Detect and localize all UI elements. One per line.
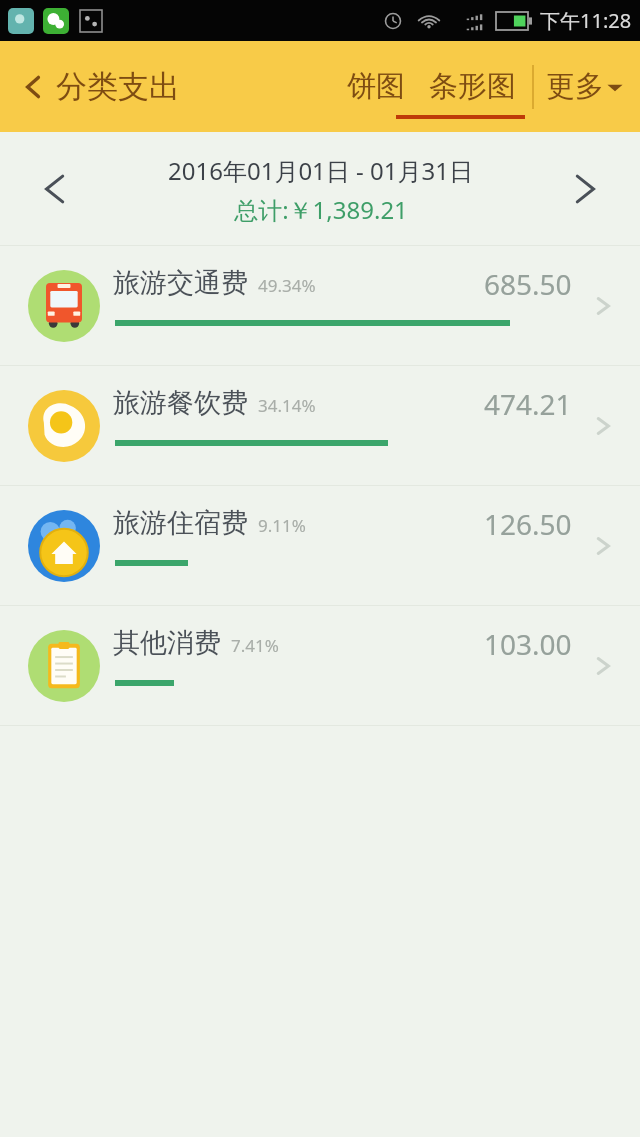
button[interactable]: 其他消费 bbox=[0, 606, 640, 725]
staticText: 685.50 bbox=[484, 265, 572, 303]
staticText: 分类支出 bbox=[56, 67, 180, 106]
button[interactable]: 旅游交通费 bbox=[0, 246, 640, 365]
staticText: 126.50 bbox=[484, 505, 572, 543]
staticText: 2016年01月01日 - 01月31日 bbox=[168, 154, 473, 187]
button[interactable]: 饼图 bbox=[337, 56, 415, 117]
button[interactable]: 更多 bbox=[540, 56, 630, 117]
staticText: 34.14% bbox=[258, 394, 316, 417]
staticText: 饼图 bbox=[347, 68, 405, 105]
button[interactable]: 旅游住宿费 bbox=[0, 486, 640, 605]
staticText: 7.41% bbox=[231, 634, 279, 657]
staticText: 474.21 bbox=[484, 385, 572, 423]
staticText: 其他消费 bbox=[113, 626, 221, 660]
button[interactable]: Previous period bbox=[28, 161, 84, 217]
staticText: 条形图 bbox=[429, 68, 516, 105]
staticText: 旅游住宿费 bbox=[113, 506, 248, 540]
staticText: 旅游餐饮费 bbox=[113, 386, 248, 420]
staticText: 49.34% bbox=[258, 274, 316, 297]
button[interactable]: Next period bbox=[556, 161, 612, 217]
button[interactable]: 旅游餐饮费 bbox=[0, 366, 640, 485]
staticText: 总计:￥1,389.21 bbox=[234, 193, 408, 226]
button[interactable]: 分类支出 bbox=[0, 59, 190, 114]
button[interactable]: 条形图 bbox=[419, 56, 526, 117]
staticText: 更多 bbox=[546, 68, 604, 105]
staticText: 下午11:28 bbox=[540, 7, 632, 34]
staticText: 9.11% bbox=[258, 514, 306, 537]
staticText: 103.00 bbox=[484, 625, 572, 663]
staticText: 旅游交通费 bbox=[113, 266, 248, 300]
